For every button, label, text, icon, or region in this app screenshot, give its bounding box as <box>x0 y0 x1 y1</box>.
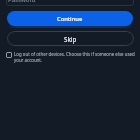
button[interactable]: Log out of other devices <box>6 51 136 63</box>
other: Log out of other devices <box>6 52 12 58</box>
staticText: Password <box>8 0 36 4</box>
staticText: Skip <box>64 35 77 43</box>
staticText: Log out of other devices. Choose this if… <box>14 51 136 63</box>
button[interactable]: Skip <box>7 31 134 46</box>
button[interactable]: Continue <box>7 11 133 26</box>
button[interactable]: Password <box>6 0 134 6</box>
staticText: Continue <box>57 15 83 23</box>
